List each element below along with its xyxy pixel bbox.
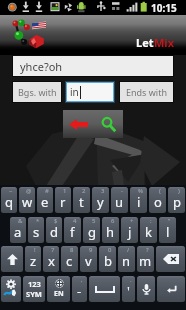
button[interactable]: ! (25, 246, 41, 272)
staticText: o (154, 193, 162, 211)
staticText: / (127, 246, 130, 254)
staticText: % (138, 187, 143, 195)
button[interactable]: 4 (64, 217, 81, 243)
staticText: . (130, 276, 132, 284)
staticText: ? (146, 246, 149, 254)
staticText: v (85, 252, 92, 270)
button[interactable]: Space (89, 276, 120, 302)
button[interactable]: Enter (157, 276, 185, 302)
button[interactable]: Shift (1, 246, 23, 272)
staticText: , (81, 276, 83, 284)
button[interactable]: Voice input (137, 276, 155, 302)
button[interactable]: 5 (83, 217, 100, 243)
staticText: i (137, 193, 141, 211)
button[interactable]: Backspace (156, 246, 185, 272)
staticText: & (18, 217, 23, 225)
button[interactable]: : (140, 217, 157, 243)
staticText: " (168, 217, 171, 225)
staticText: yhce?oh (20, 59, 63, 74)
staticText: EN (54, 289, 64, 299)
staticText: n (122, 252, 131, 270)
button[interactable]: Settings (1, 276, 21, 302)
staticText: y (97, 193, 104, 211)
staticText: SYM (26, 289, 42, 299)
staticText: ~ (9, 187, 13, 195)
button[interactable]: $ (46, 217, 62, 243)
button[interactable]: 123 (23, 276, 45, 302)
button[interactable]: % (130, 187, 147, 213)
staticText: u (115, 193, 124, 211)
button[interactable]: 2 (73, 187, 90, 213)
staticText: + (130, 217, 134, 225)
staticText: g (88, 223, 96, 241)
staticText: $ (54, 217, 58, 225)
button[interactable]: ( (149, 187, 166, 213)
button[interactable]: & (10, 217, 26, 243)
button[interactable]: 3 (92, 187, 109, 213)
button[interactable]: Bgs. with (13, 82, 61, 102)
button[interactable]: Delete (63, 110, 93, 138)
button[interactable]: ) (168, 187, 185, 213)
staticText: ' (127, 282, 130, 300)
staticText: l (166, 223, 170, 241)
staticText: Mix (154, 35, 175, 50)
staticText: m (139, 252, 152, 270)
button[interactable]: * (28, 217, 44, 243)
staticText: in (70, 85, 79, 99)
staticText: e (41, 193, 49, 211)
button[interactable]: 6 (102, 217, 119, 243)
button[interactable]: Search (93, 110, 123, 138)
staticText: s (33, 223, 40, 241)
staticText: t (79, 193, 84, 211)
staticText: x (48, 252, 55, 270)
button[interactable]: 8 (61, 246, 78, 272)
staticText: r (60, 193, 66, 211)
staticText: ) (178, 187, 180, 195)
button[interactable]: 1 (55, 187, 71, 213)
button[interactable]: 9 (80, 246, 97, 272)
button[interactable]: 7 (43, 246, 59, 272)
button[interactable]: ~ (1, 187, 17, 213)
staticText: ( (159, 187, 161, 195)
staticText: f (70, 223, 75, 241)
staticText: q (5, 193, 13, 211)
staticText: w (22, 193, 33, 211)
staticText: c (66, 252, 73, 270)
staticText: 10:15 (151, 1, 177, 15)
button[interactable]: , (72, 276, 87, 302)
button[interactable]: . (122, 276, 135, 302)
button[interactable]: " (159, 217, 176, 243)
staticText: # (45, 187, 49, 195)
button[interactable]: # (37, 187, 53, 213)
staticText: 0 (108, 246, 112, 254)
staticText: 6 (111, 217, 115, 225)
button[interactable]: Language (47, 276, 70, 302)
button[interactable]: 0 (99, 246, 116, 272)
button[interactable]: ? (137, 246, 154, 272)
staticText: 123 (28, 279, 41, 289)
staticText: d (50, 223, 58, 241)
button[interactable]: in (67, 83, 113, 101)
button[interactable]: yhce?oh (13, 56, 173, 76)
staticText: 7 (51, 246, 55, 254)
staticText: 9 (89, 246, 93, 254)
button[interactable]: @ (19, 187, 35, 213)
staticText: z (30, 252, 37, 270)
staticText: 1 (63, 187, 67, 195)
staticText: 3 (101, 187, 105, 195)
staticText: b (104, 252, 112, 270)
button[interactable]: / (118, 246, 135, 272)
staticText: 2 (82, 187, 86, 195)
button[interactable]: + (121, 217, 138, 243)
staticText: @ (26, 187, 32, 195)
button[interactable]: - (111, 187, 128, 213)
staticText: Let (136, 35, 154, 50)
staticText: Ends with (126, 86, 167, 98)
button[interactable]: Ends with (120, 82, 173, 102)
staticText: ! (34, 246, 36, 254)
staticText: a (14, 223, 22, 241)
staticText: * (36, 217, 40, 225)
staticText: 4 (73, 217, 77, 225)
staticText: - (77, 282, 82, 300)
staticText: 5 (92, 217, 96, 225)
